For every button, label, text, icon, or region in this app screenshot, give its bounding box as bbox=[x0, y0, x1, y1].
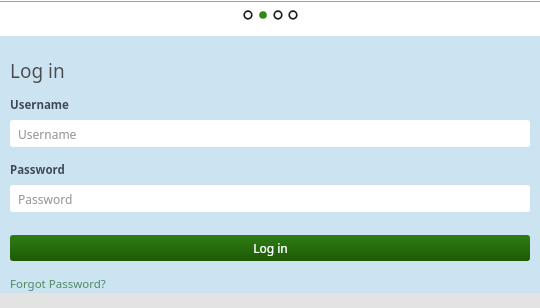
other: Page bbox=[243, 10, 253, 20]
other: Current page bbox=[258, 10, 268, 20]
button[interactable]: Password bbox=[10, 185, 530, 212]
staticText: Username bbox=[10, 97, 69, 113]
other: Page bbox=[273, 10, 283, 20]
staticText: Forgot Password? bbox=[10, 276, 106, 292]
button[interactable]: Log in bbox=[10, 235, 530, 261]
button[interactable]: Username bbox=[10, 120, 530, 147]
other: Page bbox=[288, 10, 298, 20]
staticText: Log in bbox=[253, 240, 288, 256]
staticText: Log in bbox=[10, 58, 65, 84]
button[interactable]: Forgot Password? bbox=[10, 276, 106, 292]
staticText: Username bbox=[18, 126, 77, 142]
staticText: Password bbox=[10, 162, 65, 178]
staticText: Password bbox=[18, 191, 73, 207]
